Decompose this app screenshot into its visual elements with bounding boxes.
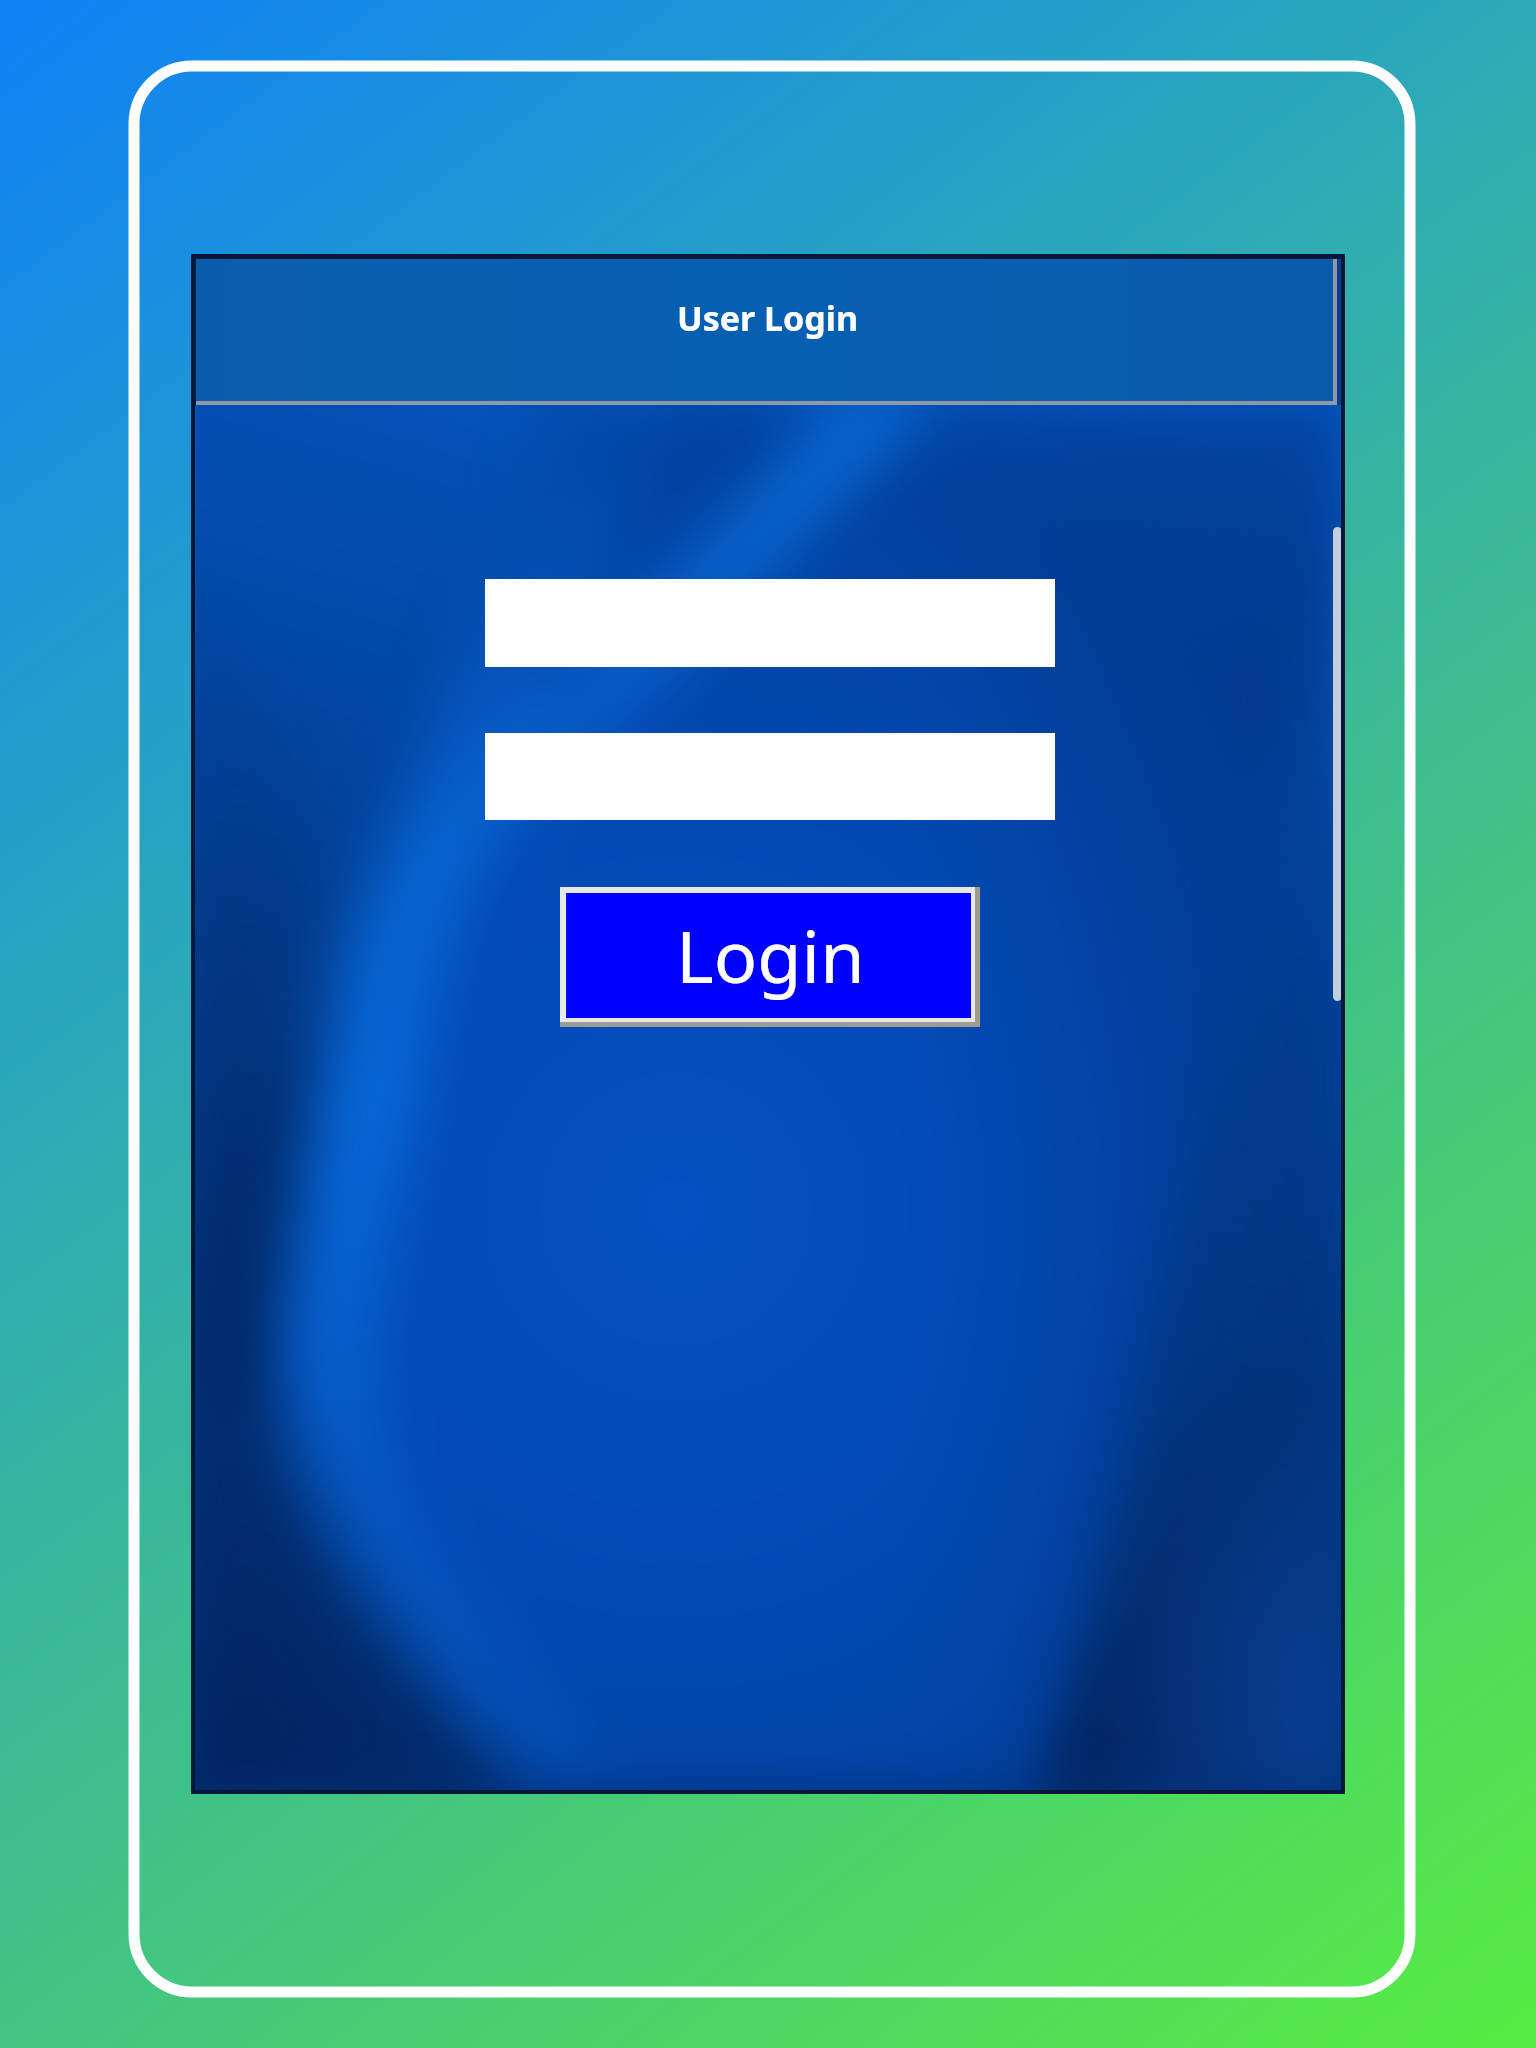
button[interactable]: Login	[560, 887, 980, 1027]
staticText: Login	[676, 906, 865, 1004]
button[interactable]: User Login title bar	[193, 256, 1343, 405]
staticText: User Login	[677, 295, 859, 341]
